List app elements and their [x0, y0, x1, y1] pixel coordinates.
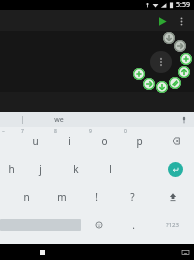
button[interactable]: k: [58, 155, 93, 183]
button[interactable]: Home: [35, 245, 49, 259]
button[interactable]: 0: [122, 127, 157, 155]
button[interactable]: m: [44, 183, 79, 211]
button[interactable]: j: [23, 155, 58, 183]
button[interactable]: Action 1: [174, 40, 186, 52]
button[interactable]: Action 7: [133, 68, 145, 80]
button[interactable]: n: [9, 183, 44, 211]
button[interactable]: !: [79, 183, 114, 211]
button[interactable]: Run: [152, 11, 172, 31]
button[interactable]: ?123: [151, 211, 194, 239]
button[interactable]: we: [48, 113, 70, 127]
button[interactable]: l: [93, 155, 128, 183]
button[interactable]: Action 4: [169, 77, 181, 89]
staticText: we: [54, 115, 64, 125]
staticText: p: [136, 134, 143, 148]
button[interactable]: Action 2: [180, 53, 192, 65]
button[interactable]: 7: [19, 127, 52, 155]
button[interactable]: Keyboard: [179, 246, 191, 258]
staticText: h: [8, 162, 15, 176]
button[interactable]: ?: [114, 183, 151, 211]
staticText: j: [39, 162, 42, 176]
staticText: 5:59: [176, 0, 190, 10]
button[interactable]: .: [116, 211, 151, 239]
staticText: !: [95, 190, 98, 204]
button[interactable]: Backspace: [157, 127, 194, 155]
staticText: l: [109, 162, 112, 176]
button[interactable]: Action 0: [163, 32, 175, 44]
button[interactable]: Action 3: [178, 66, 190, 78]
staticText: n: [23, 190, 30, 204]
button[interactable]: 9: [87, 127, 122, 155]
staticText: ?123: [166, 221, 179, 229]
button[interactable]: Voice input: [178, 114, 190, 126]
staticText: m: [57, 190, 67, 204]
button[interactable]: Emoji: [81, 211, 116, 239]
button[interactable]: Action 5: [156, 81, 168, 93]
staticText: i: [68, 134, 71, 148]
staticText: 8: [54, 128, 57, 135]
staticText: ?: [130, 190, 135, 204]
staticText: o: [101, 134, 108, 148]
button[interactable]: Enter: [168, 162, 183, 177]
button[interactable]: Shift: [151, 183, 194, 211]
staticText: u: [32, 134, 39, 148]
button[interactable]: 8: [52, 127, 87, 155]
button[interactable]: More options: [172, 12, 190, 30]
button[interactable]: Menu: [150, 51, 172, 73]
button[interactable]: Action 6: [143, 78, 155, 90]
button[interactable]: h: [0, 155, 23, 183]
staticText: 7: [21, 128, 24, 135]
staticText: .: [132, 218, 135, 232]
staticText: 9: [89, 128, 92, 135]
staticText: ~: [2, 128, 5, 135]
staticText: k: [73, 162, 79, 176]
staticText: 0: [124, 128, 127, 135]
